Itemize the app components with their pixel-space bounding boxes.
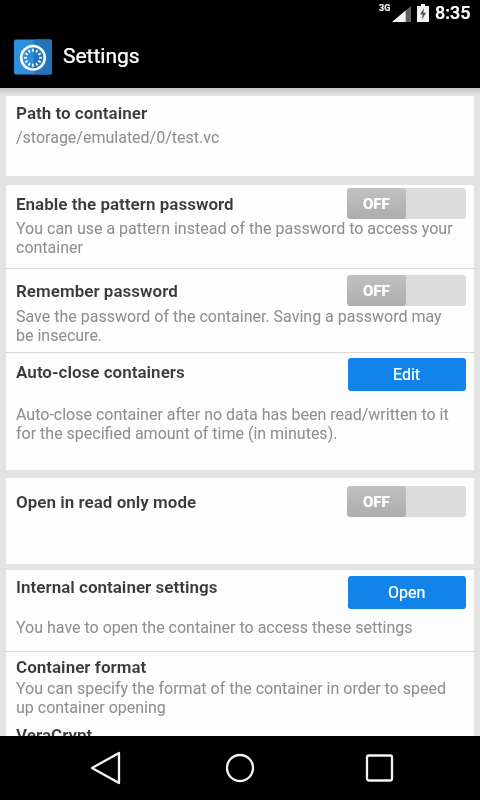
staticText: You can use a pattern instead of the pas… xyxy=(16,219,453,256)
staticText: /storage/emulated/0/test.vc xyxy=(16,128,220,147)
staticText: Auto-close container after no data has b… xyxy=(16,405,449,442)
staticText: Save the password of the container. Savi… xyxy=(16,307,442,344)
staticText: Enable the pattern password xyxy=(16,194,234,214)
staticText: Settings xyxy=(63,44,140,69)
button[interactable]: OFF xyxy=(347,275,466,306)
staticText: Path to container xyxy=(16,103,148,123)
button[interactable]: Open in read only mode xyxy=(6,478,474,564)
staticText: OFF xyxy=(363,493,390,511)
button[interactable]: Auto-close containers xyxy=(6,352,474,470)
staticText: You can specify the format of the contai… xyxy=(16,679,446,716)
staticText: You have to open the container to access… xyxy=(16,618,413,637)
button[interactable]: Container format xyxy=(6,651,474,736)
staticText: Container format xyxy=(16,657,147,677)
staticText: OFF xyxy=(363,195,390,213)
staticText: Edit xyxy=(393,365,421,384)
staticText: 8:35 xyxy=(435,2,471,23)
button[interactable]: Remember password xyxy=(6,268,474,352)
button[interactable]: OFF xyxy=(347,188,466,219)
staticText: Open in read only mode xyxy=(16,492,197,512)
button[interactable] xyxy=(347,736,411,800)
button[interactable]: OFF xyxy=(347,486,466,517)
button[interactable]: Internal container settings xyxy=(6,570,474,651)
button[interactable]: Open xyxy=(348,576,466,609)
staticText: OFF xyxy=(363,282,390,300)
staticText: VeraCrypt xyxy=(16,725,93,736)
button[interactable] xyxy=(76,736,140,800)
button[interactable]: Enable the pattern password xyxy=(6,185,474,268)
button[interactable]: Edit xyxy=(348,358,466,391)
button[interactable] xyxy=(208,736,272,800)
staticText: Open xyxy=(388,583,426,602)
button[interactable]: Path to container xyxy=(6,96,474,176)
staticText: Remember password xyxy=(16,281,178,301)
staticText: Auto-close containers xyxy=(16,362,185,382)
staticText: Internal container settings xyxy=(16,577,218,597)
staticText: 3G xyxy=(379,3,391,14)
